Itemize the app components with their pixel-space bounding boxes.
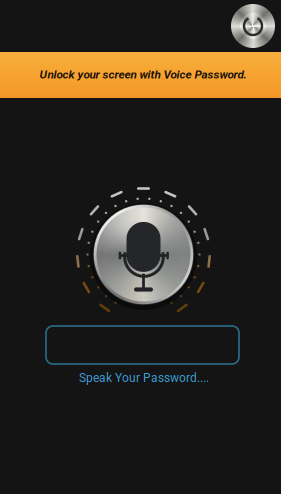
staticText: Speak Your Password.... (79, 371, 209, 385)
button[interactable]: Power (228, 1, 278, 51)
staticText: Unlock your screen with Voice Password. (39, 68, 246, 81)
button[interactable]: Unlock your screen with Voice Password. (0, 52, 281, 98)
